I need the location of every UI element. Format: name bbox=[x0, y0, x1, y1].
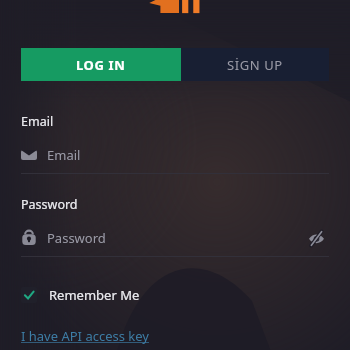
button[interactable]: Remember Me bbox=[21, 283, 140, 307]
staticText: Password bbox=[47, 229, 106, 247]
staticText: SİGN UP bbox=[227, 56, 283, 74]
staticText: Remember Me bbox=[49, 286, 140, 304]
button[interactable]: SİGN UP bbox=[181, 48, 329, 81]
staticText: Email bbox=[47, 146, 81, 164]
button[interactable]: Show password bbox=[303, 227, 329, 249]
button[interactable]: Email bbox=[21, 144, 329, 166]
staticText: Password bbox=[21, 196, 78, 213]
button[interactable]: LOG IN bbox=[21, 48, 181, 81]
staticText: I have API access key bbox=[21, 327, 149, 345]
staticText: LOG IN bbox=[76, 56, 126, 74]
button[interactable]: Password bbox=[21, 229, 303, 247]
staticText: Email bbox=[21, 113, 54, 130]
button[interactable]: I have API access key bbox=[21, 327, 149, 345]
